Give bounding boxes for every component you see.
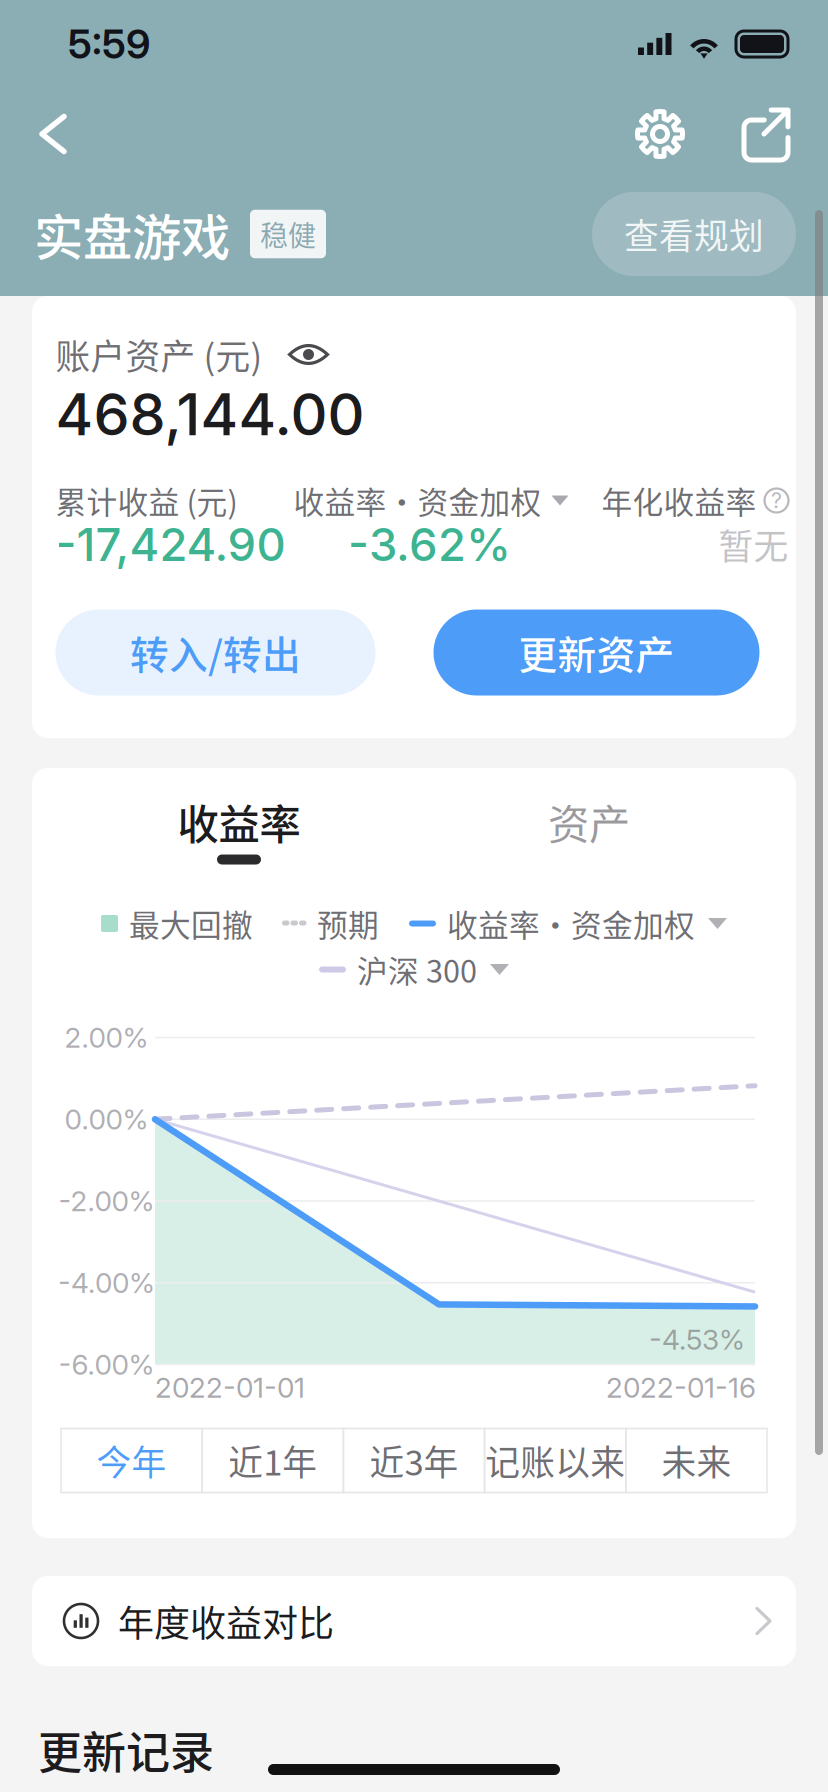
button[interactable]: 转入/转出	[55, 609, 375, 695]
staticText: -17,424.90	[55, 517, 285, 572]
staticText: 0.00%	[64, 1102, 148, 1136]
button[interactable]: Toggle balance visibility	[286, 337, 330, 371]
staticText: 沪深 300	[357, 947, 477, 992]
staticText: 收益率·资金加权	[447, 901, 695, 946]
button[interactable]: 收益率	[64, 789, 414, 873]
button[interactable]: 未来	[626, 1428, 767, 1492]
staticText: 未来	[661, 1435, 731, 1486]
staticText: 实盘游戏	[34, 198, 230, 270]
button[interactable]: 更新资产	[433, 609, 759, 695]
button[interactable]: 近3年	[343, 1428, 485, 1492]
staticText: 暂无	[718, 519, 788, 570]
staticText: 更新资产	[518, 624, 674, 680]
button[interactable]: Back	[14, 98, 92, 169]
staticText: 预期	[317, 901, 379, 946]
button[interactable]: 查看规划	[592, 192, 796, 276]
staticText: 资产	[548, 792, 630, 851]
staticText: 今年	[97, 1435, 167, 1486]
button[interactable]: 今年	[61, 1428, 202, 1492]
button[interactable]: 记账以来	[485, 1428, 626, 1492]
button[interactable]: 年度收益对比	[32, 1576, 796, 1666]
staticText: 2.00%	[64, 1021, 148, 1054]
staticText: 近3年	[369, 1435, 458, 1486]
staticText: 累计收益 (元)	[55, 478, 237, 523]
staticText: 2022-01-16	[606, 1371, 756, 1404]
button[interactable]: 近1年	[202, 1428, 343, 1492]
staticText: 468,144.00	[55, 380, 364, 449]
button[interactable]: Share	[730, 98, 802, 170]
staticText: 记账以来	[485, 1435, 625, 1486]
staticText: 年度收益对比	[118, 1595, 334, 1647]
staticText: 近1年	[228, 1435, 317, 1486]
staticText: 2022-01-01	[155, 1371, 305, 1404]
staticText: 账户资产 (元)	[55, 329, 262, 380]
staticText: 更新记录	[38, 1718, 214, 1782]
staticText: -3.62%	[348, 517, 511, 572]
staticText: 年化收益率	[601, 478, 756, 523]
staticText: 5:59	[68, 20, 150, 68]
staticText: 转入/转出	[130, 624, 301, 680]
staticText: -4.53%	[649, 1323, 745, 1356]
button[interactable]: Settings	[624, 98, 696, 170]
staticText: 收益率·资金加权	[293, 478, 541, 523]
staticText: -4.00%	[58, 1266, 155, 1300]
staticText: 收益率	[177, 792, 300, 851]
staticText: -6.00%	[58, 1348, 154, 1381]
staticText: -2.00%	[58, 1184, 154, 1218]
staticText: 稳健	[260, 214, 316, 254]
staticText: 查看规划	[624, 209, 764, 259]
button[interactable]: 资产	[414, 789, 764, 873]
staticText: 最大回撤	[129, 901, 253, 946]
staticText: ?	[771, 488, 782, 513]
